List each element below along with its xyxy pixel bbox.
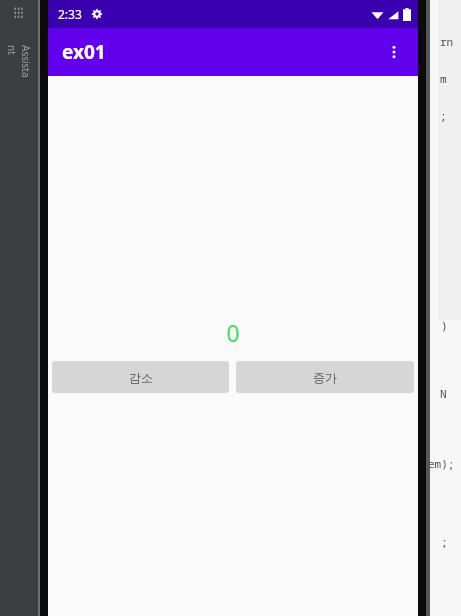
staticText: ; xyxy=(441,534,448,549)
button[interactable]: 감소 xyxy=(52,361,229,393)
staticText: 감소 xyxy=(129,370,153,385)
staticText: Assistant xyxy=(5,45,33,83)
staticText: ; xyxy=(440,108,447,123)
staticText: rn xyxy=(440,34,454,49)
staticText: 0 xyxy=(226,317,240,348)
button[interactable]: 증가 xyxy=(236,361,414,393)
staticText: ex01 xyxy=(62,39,106,65)
staticText: ) xyxy=(441,318,448,333)
staticText: 2:33 xyxy=(58,6,82,22)
staticText: 증가 xyxy=(313,370,337,385)
button[interactable]: More options xyxy=(376,34,412,70)
button[interactable]: Assistant tool window xyxy=(0,24,38,104)
staticText: em); xyxy=(428,456,455,471)
staticText: m xyxy=(440,71,447,86)
staticText: N xyxy=(440,386,447,401)
